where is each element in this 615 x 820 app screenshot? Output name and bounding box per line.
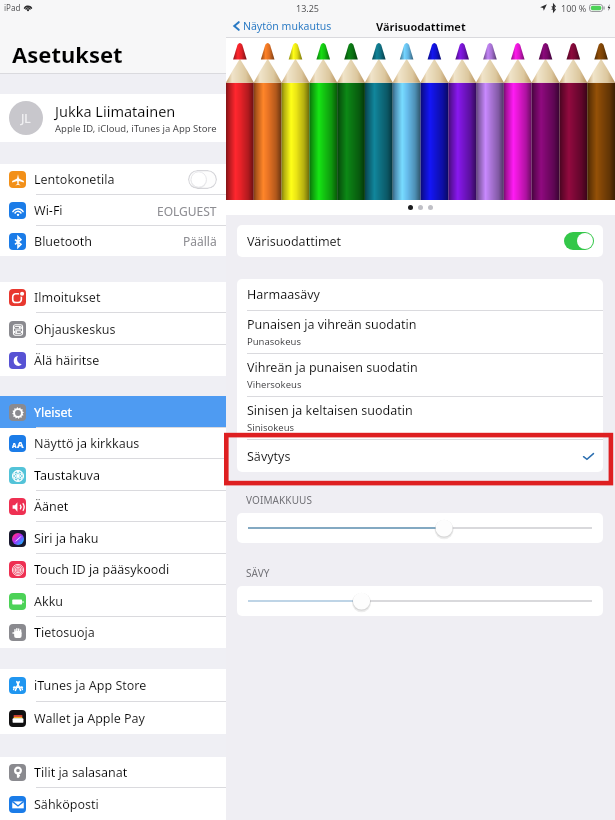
button[interactable]: Colour filters on — [564, 232, 594, 250]
button[interactable]: Taustakuva — [0, 459, 226, 491]
staticText: Ohjauskeskus — [34, 321, 116, 338]
staticText: Wallet ja Apple Pay — [34, 710, 145, 727]
button[interactable]: Siri ja haku — [0, 522, 226, 554]
button[interactable]: Sinisen ja keltaisen suodatin — [237, 397, 603, 439]
button[interactable]: Ohjauskeskus — [0, 313, 226, 345]
staticText: Sinisokeus — [247, 421, 295, 434]
staticText: SÄVY — [246, 566, 270, 580]
staticText: Päällä — [183, 233, 217, 249]
staticText: Taustakuva — [34, 467, 100, 484]
button[interactable]: Wallet ja Apple Pay — [0, 702, 226, 734]
staticText: Älä häiritse — [34, 352, 100, 369]
staticText: Tilit ja salasanat — [34, 764, 128, 781]
staticText: Vihreän ja punaisen suodatin — [247, 359, 418, 376]
staticText: Lentokonetila — [34, 171, 115, 188]
staticText: Värisuodattimet — [376, 19, 466, 34]
staticText: Värisuodattimet — [247, 233, 342, 250]
staticText: Vihersokeus — [247, 378, 302, 391]
button[interactable]: Wi-Fi — [0, 195, 226, 226]
staticText: Tietosuoja — [34, 624, 95, 641]
button[interactable]: Back — [226, 15, 338, 37]
staticText: Näyttö ja kirkkaus — [34, 435, 140, 452]
staticText: Sinisen ja keltaisen suodatin — [247, 402, 413, 419]
button[interactable]: Tilit ja salasanat — [0, 757, 226, 788]
button[interactable]: Touch ID ja pääsykoodi — [0, 554, 226, 585]
button[interactable]: Page 3 — [428, 205, 433, 210]
button[interactable]: Sävytys — [237, 440, 603, 472]
button[interactable]: Tietosuoja — [0, 617, 226, 648]
staticText: EOLGUEST — [157, 203, 217, 219]
staticText: 100 % — [561, 2, 587, 14]
staticText: Jukka Liimatainen — [55, 101, 176, 121]
staticText: Sähköposti — [34, 796, 99, 813]
staticText: Yleiset — [34, 404, 73, 421]
staticText: Ilmoitukset — [34, 289, 101, 306]
staticText: VOIMAKKUUS — [246, 493, 313, 507]
button[interactable]: JL — [0, 94, 226, 142]
staticText: Punaisen ja vihreän suodatin — [247, 316, 417, 333]
staticText: Siri ja haku — [34, 530, 99, 547]
staticText: iPad — [4, 2, 21, 13]
button[interactable]: Punaisen ja vihreän suodatin — [237, 311, 603, 353]
button[interactable]: Page 1 — [408, 205, 413, 210]
button[interactable]: Page 2 — [418, 205, 423, 210]
staticText: Bluetooth — [34, 233, 93, 250]
staticText: A — [17, 438, 24, 450]
staticText: JL — [21, 110, 31, 126]
staticText: iTunes ja App Store — [34, 677, 147, 694]
button[interactable]: Airplane mode off — [188, 170, 217, 189]
button[interactable]: Ilmoitukset — [0, 282, 226, 313]
staticText: Akku — [34, 593, 64, 610]
staticText: A — [12, 441, 17, 450]
button[interactable]: Äänet — [0, 491, 226, 522]
other: Back — [233, 20, 240, 32]
staticText: Harmaasävy — [247, 286, 320, 303]
staticText: 13.25 — [296, 2, 320, 14]
staticText: Näytön mukautus — [243, 19, 332, 33]
button[interactable]: Akku — [0, 585, 226, 617]
staticText: Asetukset — [12, 39, 123, 69]
button[interactable]: Vihreän ja punaisen suodatin — [237, 354, 603, 396]
button[interactable]: Lentokonetila — [0, 164, 226, 195]
staticText: Sävytys — [247, 448, 291, 465]
button[interactable]: Älä häiritse — [0, 345, 226, 376]
button[interactable]: Bluetooth — [0, 226, 226, 256]
button[interactable]: Sähköposti — [0, 788, 226, 820]
staticText: Punasokeus — [247, 335, 301, 348]
staticText: Äänet — [34, 498, 69, 515]
button[interactable]: Värisuodattimet — [237, 225, 603, 257]
button[interactable]: iTunes ja App Store — [0, 669, 226, 702]
button[interactable]: Yleiset — [0, 396, 226, 428]
button[interactable]: Harmaasävy — [237, 279, 603, 310]
staticText: Touch ID ja pääsykoodi — [34, 561, 170, 578]
staticText: Wi-Fi — [34, 202, 63, 219]
staticText: Apple ID, iCloud, iTunes ja App Store — [55, 122, 217, 135]
button[interactable]: A — [0, 428, 226, 459]
